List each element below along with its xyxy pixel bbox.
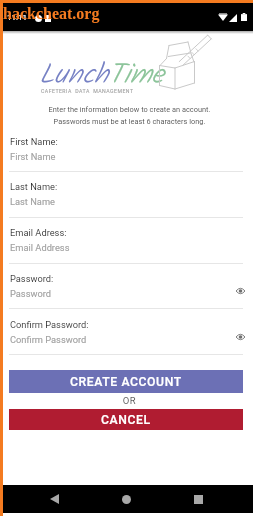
button[interactable]: Back xyxy=(39,485,69,513)
staticText: Confirm Password xyxy=(10,334,87,345)
staticText: Password: xyxy=(10,273,54,284)
button[interactable]: CANCEL xyxy=(9,409,243,430)
button[interactable]: Recent apps xyxy=(183,485,213,513)
staticText: CAFETERIA DATA MANAGEMENT xyxy=(41,88,134,94)
staticText: Password xyxy=(10,288,52,299)
staticText: First Name: xyxy=(10,136,58,147)
staticText: Last Name xyxy=(10,196,55,207)
staticText: Confirm Password: xyxy=(10,319,89,330)
staticText: hackcheat.org xyxy=(3,5,100,23)
button[interactable]: Show password xyxy=(234,284,247,297)
staticText: First Name xyxy=(10,151,56,162)
staticText: CANCEL xyxy=(101,413,151,427)
staticText: CREATE ACCOUNT xyxy=(70,375,182,389)
staticText: Email Adress: xyxy=(10,227,67,238)
staticText: LunchTime xyxy=(39,53,164,98)
staticText: Email Address xyxy=(10,242,70,253)
staticText: OR xyxy=(3,395,253,406)
button[interactable]: Show password xyxy=(234,330,247,343)
staticText: 11:11 xyxy=(7,13,27,22)
button[interactable]: Home xyxy=(111,485,141,513)
button[interactable]: CREATE ACCOUNT xyxy=(9,370,243,393)
staticText: Enter the information below to create an… xyxy=(3,105,253,125)
staticText: Last Name: xyxy=(10,181,58,192)
